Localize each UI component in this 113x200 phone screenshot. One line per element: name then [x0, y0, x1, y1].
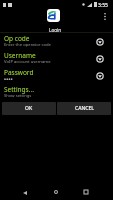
staticText: Login — [45, 27, 65, 33]
button[interactable]: OK — [2, 102, 56, 115]
button[interactable]: Home — [51, 187, 61, 197]
other: Open Username — [96, 55, 104, 63]
staticText: 3:55 — [98, 2, 108, 9]
button[interactable]: Back — [19, 187, 30, 198]
button[interactable]: Recent apps — [81, 187, 91, 197]
other: Open Op code — [96, 38, 104, 46]
staticText: Password — [4, 68, 34, 77]
button[interactable]: Settings... — [0, 84, 113, 101]
staticText: Show settings — [4, 93, 32, 99]
button[interactable]: Password — [0, 67, 113, 84]
button[interactable]: Username — [0, 50, 113, 67]
staticText: VoIP account username — [4, 59, 51, 65]
other: Open Password — [96, 72, 104, 80]
button[interactable]: CANCEL — [57, 102, 111, 115]
staticText: Username — [4, 51, 36, 60]
staticText: Enter the operator code — [4, 42, 51, 48]
button[interactable]: Op code — [0, 33, 113, 50]
staticText: CANCEL — [75, 105, 94, 112]
staticText: OK — [25, 105, 33, 112]
button[interactable]: More options — [100, 12, 109, 21]
staticText: Op code — [4, 34, 30, 43]
staticText: Settings... — [4, 85, 34, 94]
